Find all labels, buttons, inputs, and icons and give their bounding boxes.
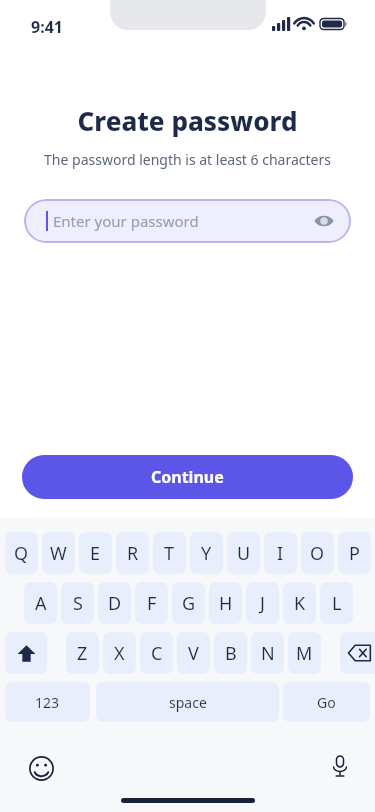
staticText: P xyxy=(349,541,360,566)
staticText: Continue xyxy=(151,466,224,488)
button[interactable]: P xyxy=(338,532,371,574)
button[interactable]: D xyxy=(98,582,131,624)
button[interactable]: S xyxy=(61,582,94,624)
button[interactable]: Q xyxy=(5,532,38,574)
button[interactable]: J xyxy=(246,582,279,624)
button[interactable]: Go xyxy=(283,682,370,722)
button[interactable]: V xyxy=(177,632,210,674)
staticText: X xyxy=(114,641,125,666)
button[interactable]: Emoji xyxy=(24,751,58,785)
button[interactable]: T xyxy=(153,532,186,574)
staticText: 9:41 xyxy=(31,16,63,38)
staticText: U xyxy=(237,541,251,566)
button[interactable]: Voice input xyxy=(325,751,355,781)
button[interactable]: X xyxy=(103,632,136,674)
staticText: Enter your password xyxy=(53,211,199,231)
button[interactable]: U xyxy=(227,532,260,574)
staticText: Create password xyxy=(77,103,298,138)
staticText: R xyxy=(127,541,139,566)
staticText: H xyxy=(219,591,233,616)
staticText: L xyxy=(332,591,342,616)
button[interactable]: W xyxy=(42,532,75,574)
staticText: M xyxy=(296,641,313,666)
button[interactable]: Backspace xyxy=(340,632,375,674)
staticText: E xyxy=(90,541,101,566)
button[interactable]: space xyxy=(96,682,279,722)
button[interactable]: F xyxy=(135,582,168,624)
staticText: 123 xyxy=(35,693,60,712)
button[interactable]: M xyxy=(288,632,321,674)
button[interactable]: N xyxy=(251,632,284,674)
staticText: Y xyxy=(201,541,212,566)
button[interactable]: 123 xyxy=(5,682,90,722)
staticText: Z xyxy=(77,641,88,666)
button[interactable]: Shift xyxy=(5,632,47,674)
staticText: S xyxy=(73,591,83,616)
staticText: B xyxy=(225,641,237,666)
staticText: F xyxy=(147,591,157,616)
staticText: G xyxy=(182,591,196,616)
button[interactable]: B xyxy=(214,632,247,674)
button[interactable]: O xyxy=(301,532,334,574)
button[interactable]: I xyxy=(264,532,297,574)
staticText: C xyxy=(151,641,163,666)
button[interactable]: G xyxy=(172,582,205,624)
button[interactable]: H xyxy=(209,582,242,624)
button[interactable]: E xyxy=(79,532,112,574)
button[interactable]: Y xyxy=(190,532,223,574)
staticText: I xyxy=(277,541,284,566)
button[interactable]: Continue xyxy=(22,455,353,499)
button[interactable]: Show password xyxy=(311,208,337,234)
staticText: V xyxy=(188,641,199,666)
staticText: space xyxy=(169,693,207,712)
button[interactable]: Enter your password xyxy=(24,199,351,243)
button[interactable]: A xyxy=(24,582,57,624)
staticText: Q xyxy=(14,541,29,566)
button[interactable]: Z xyxy=(66,632,99,674)
button[interactable]: L xyxy=(320,582,353,624)
staticText: K xyxy=(294,591,306,616)
staticText: O xyxy=(310,541,325,566)
staticText: D xyxy=(108,591,122,616)
button[interactable]: R xyxy=(116,532,149,574)
staticText: W xyxy=(50,541,67,566)
staticText: The password length is at least 6 charac… xyxy=(44,150,331,169)
staticText: T xyxy=(164,541,175,566)
staticText: J xyxy=(260,591,265,616)
staticText: N xyxy=(261,641,275,666)
staticText: Go xyxy=(317,693,336,712)
staticText: A xyxy=(35,591,47,616)
button[interactable]: K xyxy=(283,582,316,624)
button[interactable]: C xyxy=(140,632,173,674)
